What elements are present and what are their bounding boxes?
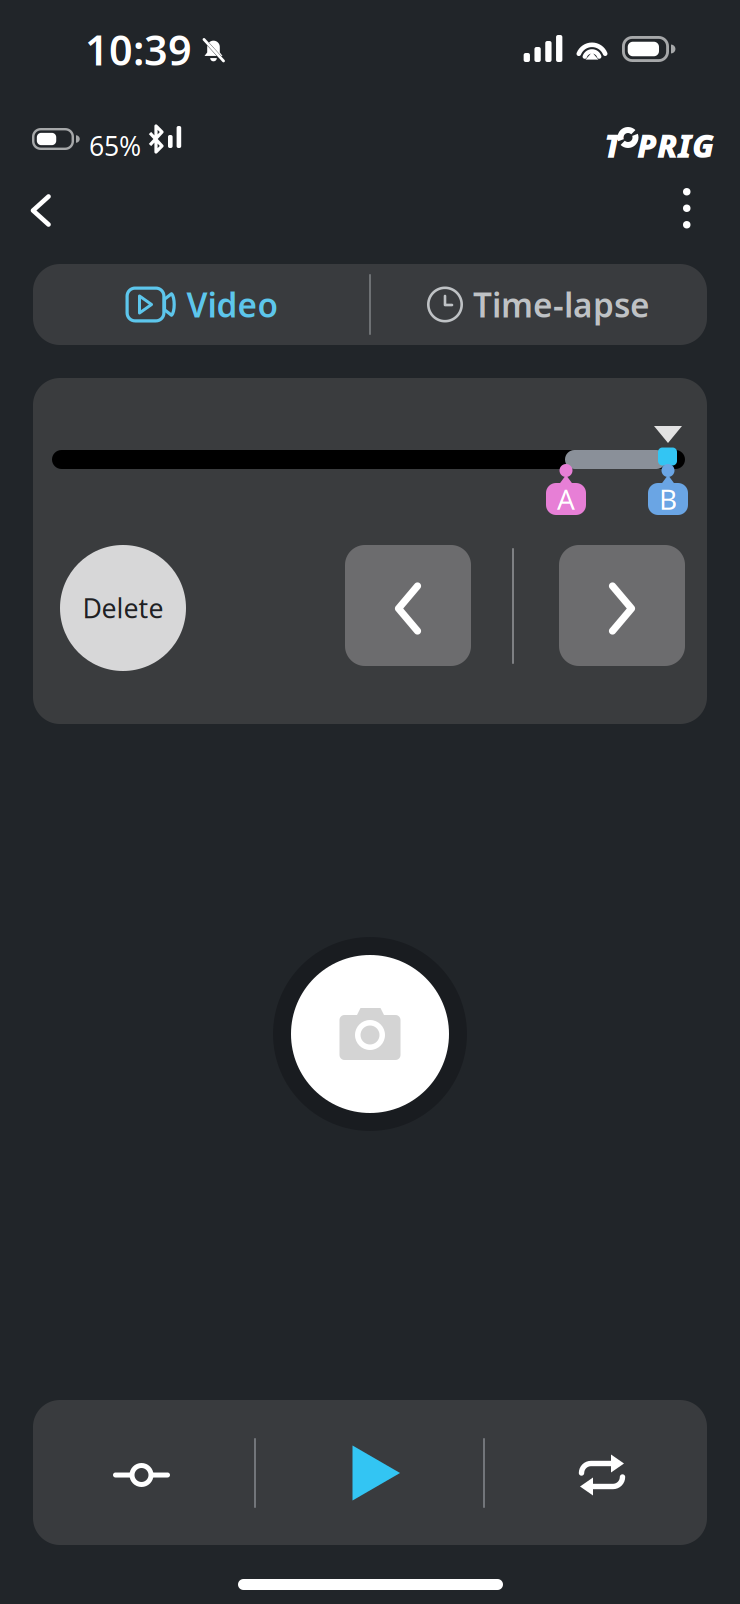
staticText: A — [557, 480, 575, 518]
staticText: T — [604, 124, 622, 166]
staticText: Time-lapse — [473, 282, 650, 327]
staticText: 65% — [89, 128, 141, 163]
staticText: Video — [186, 282, 278, 327]
button[interactable]: Next frame — [559, 545, 685, 666]
button[interactable]: Play — [349, 1443, 403, 1503]
button[interactable]: Previous frame — [345, 545, 471, 666]
button[interactable]: Trim clip — [113, 1462, 170, 1488]
button[interactable]: Repeat — [573, 1449, 631, 1501]
button[interactable]: Capture photo — [273, 937, 467, 1131]
button[interactable]: Back — [14, 178, 68, 243]
button[interactable]: Video — [33, 264, 370, 345]
staticText: PRIG — [637, 124, 714, 166]
button[interactable]: Delete — [60, 545, 186, 671]
staticText: B — [659, 480, 677, 518]
staticText: 10:39 — [85, 22, 192, 77]
staticText: Delete — [82, 590, 163, 626]
button[interactable]: Time-lapse — [370, 264, 707, 345]
button[interactable]: More options — [663, 168, 710, 248]
